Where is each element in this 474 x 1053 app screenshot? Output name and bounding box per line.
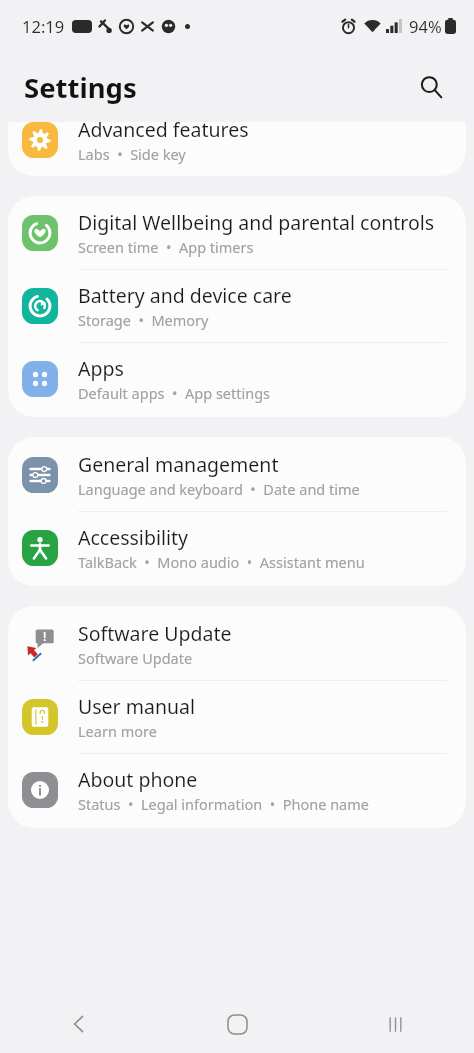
- staticText: Advanced features: [78, 122, 249, 143]
- button[interactable]: User manual: [8, 681, 466, 754]
- staticText: Settings: [24, 69, 137, 106]
- staticText: Learn more: [78, 721, 157, 741]
- button[interactable]: Software Update: [8, 606, 466, 681]
- button[interactable]: Search: [410, 66, 452, 108]
- staticText: Language and keyboard • Date and time: [78, 479, 360, 499]
- button[interactable]: Accessibility: [8, 512, 466, 586]
- staticText: 12:19: [22, 15, 65, 37]
- button[interactable]: About phone: [8, 754, 466, 828]
- staticText: Accessibility: [78, 524, 188, 551]
- staticText: Storage • Memory: [78, 310, 209, 330]
- button[interactable]: Advanced features: [8, 122, 466, 176]
- staticText: 94%: [409, 15, 442, 37]
- button[interactable]: Back: [0, 995, 158, 1053]
- staticText: Software Update: [78, 620, 232, 647]
- staticText: Screen time • App timers: [78, 237, 254, 257]
- staticText: User manual: [78, 693, 195, 720]
- button[interactable]: General management: [8, 437, 466, 512]
- button[interactable]: Recent apps: [316, 995, 474, 1053]
- button[interactable]: Battery and device care: [8, 270, 466, 343]
- staticText: General management: [78, 451, 279, 478]
- staticText: TalkBack • Mono audio • Assistant menu: [78, 552, 365, 572]
- staticText: About phone: [78, 766, 198, 793]
- staticText: Default apps • App settings: [78, 383, 271, 403]
- button[interactable]: Apps: [8, 343, 466, 417]
- staticText: Status • Legal information • Phone name: [78, 794, 369, 814]
- staticText: Apps: [78, 355, 124, 382]
- staticText: Labs • Side key: [78, 144, 186, 164]
- button[interactable]: Digital Wellbeing and parental controls: [8, 196, 466, 270]
- staticText: Battery and device care: [78, 282, 292, 309]
- staticText: Digital Wellbeing and parental controls: [78, 209, 435, 236]
- button[interactable]: Home: [158, 995, 316, 1053]
- staticText: Software Update: [78, 648, 193, 668]
